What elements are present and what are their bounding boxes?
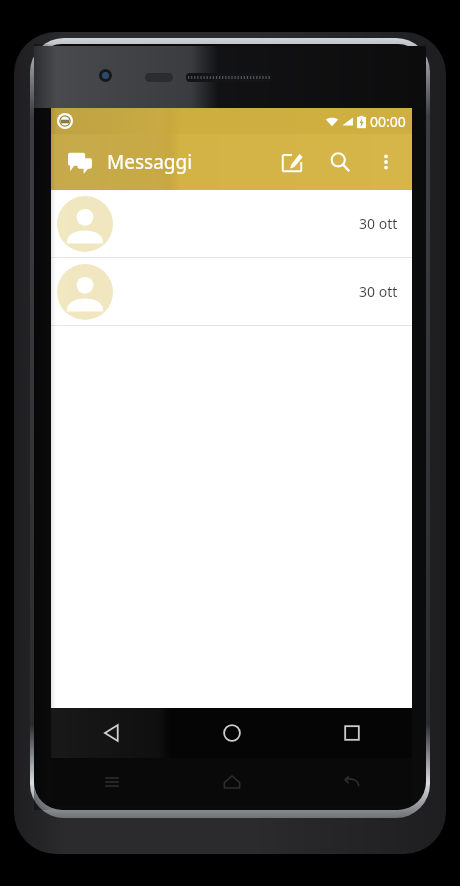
button[interactable]: Home <box>172 708 292 758</box>
button[interactable]: 30 ott <box>51 190 412 257</box>
staticText: 30 ott <box>359 214 398 233</box>
button[interactable]: Nuovo messaggio <box>268 138 316 186</box>
staticText: 00:00 <box>370 112 406 131</box>
button[interactable]: Indietro <box>51 708 172 758</box>
button[interactable]: Cerca <box>316 138 364 186</box>
button[interactable]: 30 ott <box>51 258 412 325</box>
staticText: 30 ott <box>359 282 398 301</box>
staticText: Messaggi <box>107 149 193 175</box>
button[interactable]: Altre opzioni <box>364 140 408 184</box>
button[interactable]: Recenti <box>292 708 412 758</box>
